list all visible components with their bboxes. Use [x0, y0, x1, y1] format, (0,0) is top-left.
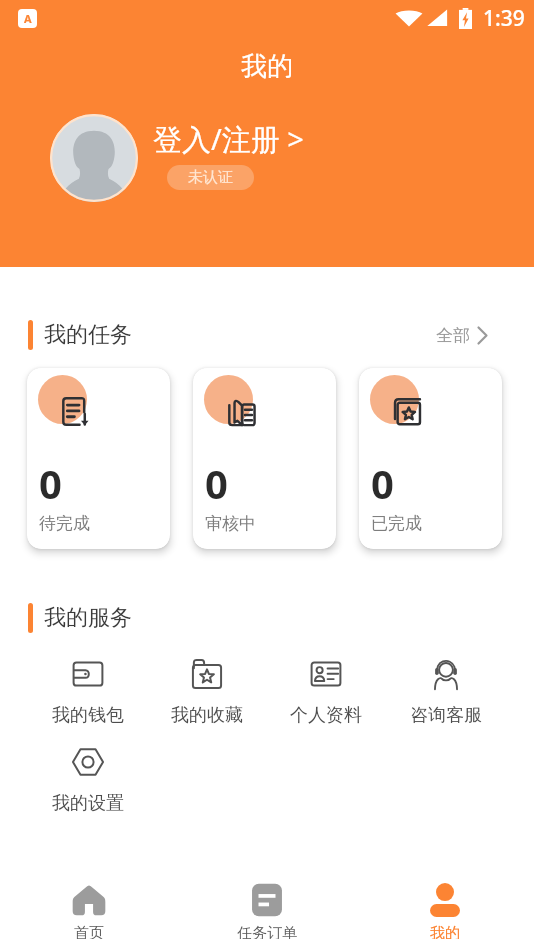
staticText: 咨询客服 — [410, 704, 482, 727]
button[interactable]: 未认证 — [167, 165, 254, 190]
staticText: 我的钱包 — [52, 704, 124, 727]
staticText: 审核中 — [205, 513, 256, 534]
staticText: 个人资料 — [290, 704, 362, 727]
button[interactable]: 0 — [27, 368, 170, 549]
staticText: A — [24, 11, 32, 26]
button[interactable]: 个人资料 — [266, 654, 386, 731]
staticText: 1:39 — [483, 4, 525, 33]
staticText: 任务订单 — [237, 924, 297, 939]
button[interactable]: 任务订单 — [178, 864, 356, 950]
staticText: 我的任务 — [44, 321, 132, 349]
button[interactable]: 0 — [359, 368, 502, 549]
button[interactable]: 0 — [193, 368, 336, 549]
staticText: 全部 — [436, 325, 470, 346]
staticText: 0 — [205, 456, 228, 510]
staticText: 我的服务 — [44, 604, 132, 632]
button[interactable]: 登入/注册 > — [153, 119, 304, 159]
button[interactable]: 我的收藏 — [147, 654, 266, 731]
staticText: 0 — [371, 456, 394, 510]
staticText: 首页 — [74, 924, 104, 939]
staticText: 未认证 — [188, 168, 233, 187]
button[interactable]: 我的 — [356, 864, 534, 950]
staticText: 登入/注册 > — [153, 119, 304, 159]
staticText: 待完成 — [39, 513, 90, 534]
staticText: 0 — [39, 456, 62, 510]
button[interactable]: 首页 — [0, 864, 178, 950]
staticText: 我的 — [241, 50, 293, 83]
staticText: 我的设置 — [52, 792, 124, 815]
staticText: 已完成 — [371, 513, 422, 534]
staticText: 我的收藏 — [171, 704, 243, 727]
button[interactable]: 咨询客服 — [386, 654, 506, 731]
staticText: 我的 — [430, 924, 460, 939]
other: App icon — [18, 9, 37, 28]
button[interactable]: 我的钱包 — [28, 654, 147, 731]
button[interactable]: 全部 — [436, 325, 488, 346]
button[interactable]: 我的设置 — [28, 742, 147, 819]
